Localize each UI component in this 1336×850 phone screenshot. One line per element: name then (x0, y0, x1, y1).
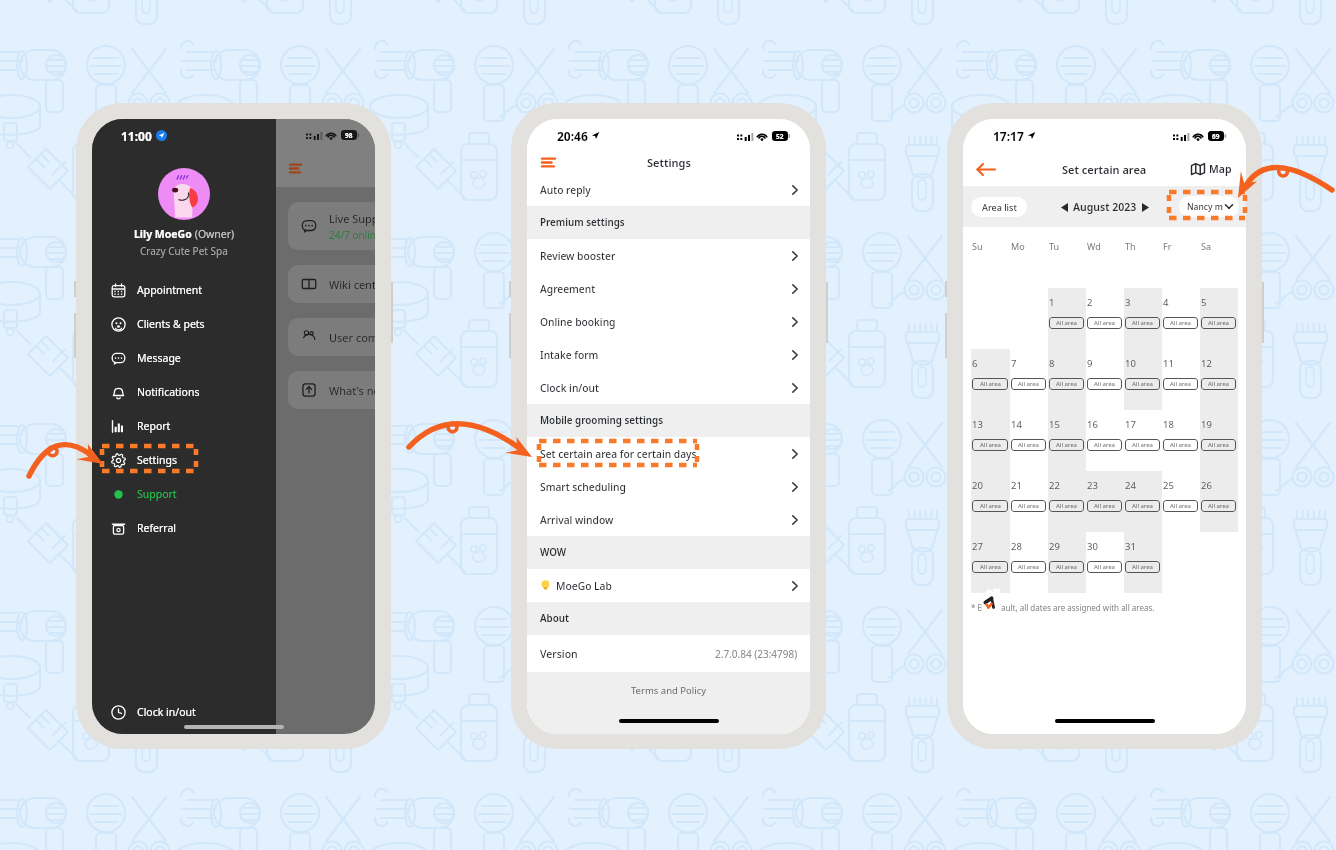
staticText: 52 (776, 132, 784, 141)
staticText: All area (1132, 319, 1153, 327)
button[interactable]: All area (1087, 561, 1122, 573)
button[interactable]: Review booster (527, 239, 810, 272)
staticText: All area (1208, 380, 1229, 388)
button[interactable]: All area (1125, 378, 1160, 390)
button[interactable]: All area (1011, 500, 1046, 512)
staticText: Auto reply (540, 183, 591, 197)
button[interactable]: Report (92, 409, 276, 443)
button[interactable]: Clock in/out (92, 695, 276, 729)
button[interactable]: Wiki center (288, 265, 375, 303)
staticText: All area (1056, 441, 1077, 449)
staticText: Clients & pets (137, 317, 205, 331)
staticText: All area (1018, 563, 1039, 571)
button[interactable]: All area (1087, 439, 1122, 451)
button[interactable]: All area (1049, 500, 1084, 512)
button[interactable]: Clients & pets (92, 307, 276, 341)
button[interactable]: Set certain area for certain days (527, 437, 810, 470)
staticText: Lily MoeGo (134, 227, 192, 241)
button[interactable]: All area (1049, 378, 1084, 390)
button[interactable]: Online booking (527, 305, 810, 338)
staticText: 14 (1011, 418, 1022, 431)
button[interactable]: All area (1087, 378, 1122, 390)
button[interactable]: All area (1201, 378, 1236, 390)
staticText: All area (1056, 502, 1077, 510)
staticText: Intake form (540, 348, 599, 362)
staticText: Appointment (137, 283, 202, 297)
button[interactable]: All area (1163, 317, 1198, 329)
staticText: All area (1132, 502, 1153, 510)
staticText: 27 (972, 540, 983, 553)
button[interactable]: Referral (92, 511, 276, 545)
staticText: WOW (540, 546, 567, 559)
button[interactable]: Arrival window (527, 503, 810, 536)
staticText: 29 (1049, 540, 1060, 553)
button[interactable]: All area (1049, 317, 1084, 329)
staticText: All area (1056, 319, 1077, 327)
staticText: Referral (137, 521, 177, 535)
button[interactable]: Message (92, 341, 276, 375)
staticText: 11:00 (121, 128, 152, 144)
staticText: MoeGo Lab (556, 579, 612, 593)
staticText: All area (1018, 502, 1039, 510)
button[interactable]: MoeGo Lab (527, 569, 810, 602)
button[interactable]: All area (972, 439, 1008, 451)
button[interactable]: All area (1163, 439, 1198, 451)
staticText: 30 (1087, 540, 1098, 553)
button[interactable]: All area (1087, 500, 1122, 512)
button[interactable]: All area (1087, 317, 1122, 329)
button[interactable]: All area (1201, 500, 1236, 512)
button[interactable]: User community (288, 318, 375, 356)
button[interactable]: Smart scheduling (527, 470, 810, 503)
button[interactable]: Live Support (288, 202, 375, 250)
button[interactable]: All area (1163, 378, 1198, 390)
button[interactable]: All area (1125, 317, 1160, 329)
staticText: 7 (1011, 357, 1017, 370)
staticText: Clock in/out (540, 381, 599, 395)
button[interactable]: Notifications (92, 375, 276, 409)
button[interactable] (1142, 203, 1149, 212)
button[interactable]: Auto reply (527, 173, 810, 206)
button[interactable]: Appointment (92, 273, 276, 307)
button[interactable]: All area (1201, 439, 1236, 451)
button[interactable]: Support (92, 477, 276, 511)
button[interactable]: All area (1163, 500, 1198, 512)
staticText: Set certain area (1062, 162, 1147, 177)
button[interactable] (1061, 203, 1068, 212)
button[interactable]: All area (972, 378, 1008, 390)
button[interactable]: All area (1125, 500, 1160, 512)
button[interactable]: All area (972, 500, 1008, 512)
button[interactable]: All area (1125, 439, 1160, 451)
button[interactable]: Intake form (527, 338, 810, 371)
staticText: All area (980, 502, 1001, 510)
staticText: 17:17 (993, 128, 1024, 144)
button[interactable]: All area (972, 561, 1008, 573)
button[interactable]: Terms and Policy (631, 684, 707, 697)
button[interactable]: Area list (971, 197, 1027, 217)
staticText: All area (1094, 380, 1115, 388)
button[interactable]: Agreement (527, 272, 810, 305)
button[interactable]: Clock in/out (527, 371, 810, 404)
staticText: 24/7 online (329, 228, 375, 242)
button[interactable]: All area (1125, 561, 1160, 573)
staticText: Report (137, 419, 171, 433)
button[interactable]: Map (1191, 162, 1232, 176)
staticText: Set certain area for certain days (540, 447, 697, 461)
button[interactable]: Back (977, 163, 995, 176)
button[interactable]: All area (1011, 378, 1046, 390)
button[interactable]: All area (1011, 561, 1046, 573)
button[interactable]: All area (1049, 439, 1084, 451)
staticText: All area (1208, 441, 1229, 449)
button[interactable]: Menu (541, 157, 556, 168)
button[interactable]: All area (1201, 317, 1236, 329)
button[interactable]: All area (1011, 439, 1046, 451)
staticText: Settings (137, 453, 177, 467)
button[interactable]: Settings (92, 443, 276, 477)
button[interactable]: What's new (288, 371, 375, 409)
staticText: All area (1132, 441, 1153, 449)
staticText: Version (540, 647, 578, 661)
button[interactable]: Nancy m (1179, 196, 1239, 217)
staticText: Map (1209, 162, 1232, 176)
staticText: Message (137, 351, 181, 365)
button[interactable]: All area (1049, 561, 1084, 573)
staticText: All area (1094, 441, 1115, 449)
